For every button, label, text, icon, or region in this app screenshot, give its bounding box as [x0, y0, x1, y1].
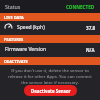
staticText: If you don't use it, delete the sensor t…	[6, 67, 94, 85]
staticText: Firmware Version	[5, 46, 47, 53]
staticText: DEACTIVATE	[4, 59, 28, 64]
other: Speed sensor	[4, 23, 13, 32]
button[interactable]: Firmware Version	[0, 43, 100, 56]
staticText: Status	[5, 3, 21, 10]
staticText: 37.8	[86, 25, 96, 31]
button[interactable]: Deactivate Sensor	[24, 85, 77, 96]
staticText: Deactivate Sensor	[31, 88, 71, 94]
staticText: LIVE DATA	[4, 15, 24, 20]
staticText: Speed (kph)	[17, 24, 45, 31]
button[interactable]: Status	[0, 0, 100, 13]
staticText: CONNECTED	[66, 4, 95, 10]
staticText: N/A	[86, 47, 95, 53]
button[interactable]: Speed sensor	[0, 21, 100, 34]
staticText: FEATURES	[4, 37, 24, 42]
